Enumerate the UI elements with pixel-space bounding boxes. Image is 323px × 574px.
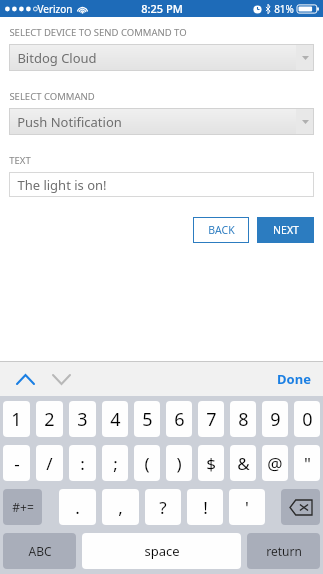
staticText: Push Notification (17, 113, 122, 131)
staticText: #+= (12, 499, 34, 515)
staticText: Verizon (37, 2, 73, 16)
staticText: / (46, 452, 53, 475)
button[interactable]: - (3, 445, 30, 481)
button[interactable]: ! (187, 489, 223, 525)
button[interactable]: 8 (230, 401, 256, 437)
button[interactable]: Bitdog Cloud (9, 44, 314, 71)
staticText: NEXT (273, 223, 299, 237)
staticText: ? (159, 496, 167, 519)
staticText: 3 (77, 407, 88, 432)
staticText: 4 (110, 407, 121, 432)
staticText: space (144, 542, 180, 560)
staticText: 9 (270, 407, 281, 432)
button[interactable]: . (59, 489, 96, 525)
staticText: Done (277, 370, 311, 388)
staticText: 2 (44, 407, 55, 432)
staticText: 6 (174, 407, 185, 432)
staticText: @ (267, 452, 283, 475)
button[interactable]: Done (277, 370, 311, 388)
staticText: & (237, 452, 250, 475)
button[interactable]: 0 (294, 401, 320, 437)
button[interactable]: space (82, 533, 241, 569)
button[interactable]: / (36, 445, 63, 481)
button[interactable]: 7 (198, 401, 224, 437)
staticText: ( (144, 452, 150, 475)
staticText: The light is on! (17, 176, 107, 194)
button[interactable]: NEXT (257, 217, 314, 243)
staticText: SELECT COMMAND (9, 90, 95, 103)
button[interactable]: BACK (193, 217, 249, 243)
staticText: 81% (274, 2, 294, 16)
staticText: , (118, 496, 123, 519)
button[interactable]: , (102, 489, 139, 525)
staticText: . (75, 496, 80, 519)
staticText: 5 (142, 407, 153, 432)
button[interactable]: 5 (134, 401, 160, 437)
staticText: TEXT (9, 154, 31, 167)
staticText: ; (113, 452, 118, 475)
staticText: ABC (28, 543, 52, 559)
button[interactable]: Push Notification (9, 108, 314, 135)
button[interactable]: " (294, 445, 320, 481)
staticText: 0 (302, 407, 313, 432)
staticText: ' (245, 496, 249, 519)
button[interactable]: : (69, 445, 96, 481)
button[interactable]: The light is on! (9, 172, 314, 197)
button[interactable]: 1 (3, 401, 30, 437)
staticText: $ (206, 452, 216, 475)
staticText: Bitdog Cloud (17, 49, 97, 67)
button[interactable]: return (247, 533, 320, 569)
button[interactable]: 4 (102, 401, 128, 437)
staticText: 8 (238, 407, 249, 432)
button[interactable]: ABC (3, 533, 76, 569)
button[interactable]: #+= (3, 489, 42, 525)
staticText: " (304, 452, 311, 475)
staticText: 1 (11, 407, 22, 432)
staticText: - (14, 452, 20, 475)
button[interactable]: 9 (262, 401, 288, 437)
button[interactable]: 6 (166, 401, 192, 437)
staticText: : (80, 452, 85, 475)
button[interactable]: Previous field (10, 365, 40, 393)
staticText: BACK (208, 223, 235, 237)
button[interactable]: ( (134, 445, 160, 481)
staticText: ) (176, 452, 182, 475)
staticText: 8:25 PM (141, 1, 183, 16)
button[interactable]: Backspace (281, 489, 320, 525)
button[interactable]: ' (229, 489, 265, 525)
button[interactable]: & (230, 445, 256, 481)
staticText: return (266, 543, 302, 559)
button[interactable]: @ (262, 445, 288, 481)
button[interactable]: ; (102, 445, 128, 481)
button[interactable]: ? (145, 489, 181, 525)
button[interactable]: Next field (46, 365, 76, 393)
button[interactable]: ) (166, 445, 192, 481)
button[interactable]: 2 (36, 401, 63, 437)
button[interactable]: 3 (69, 401, 96, 437)
button[interactable]: $ (198, 445, 224, 481)
staticText: SELECT DEVICE TO SEND COMMAND TO (9, 26, 187, 39)
staticText: ! (203, 496, 208, 519)
staticText: 7 (206, 407, 217, 432)
